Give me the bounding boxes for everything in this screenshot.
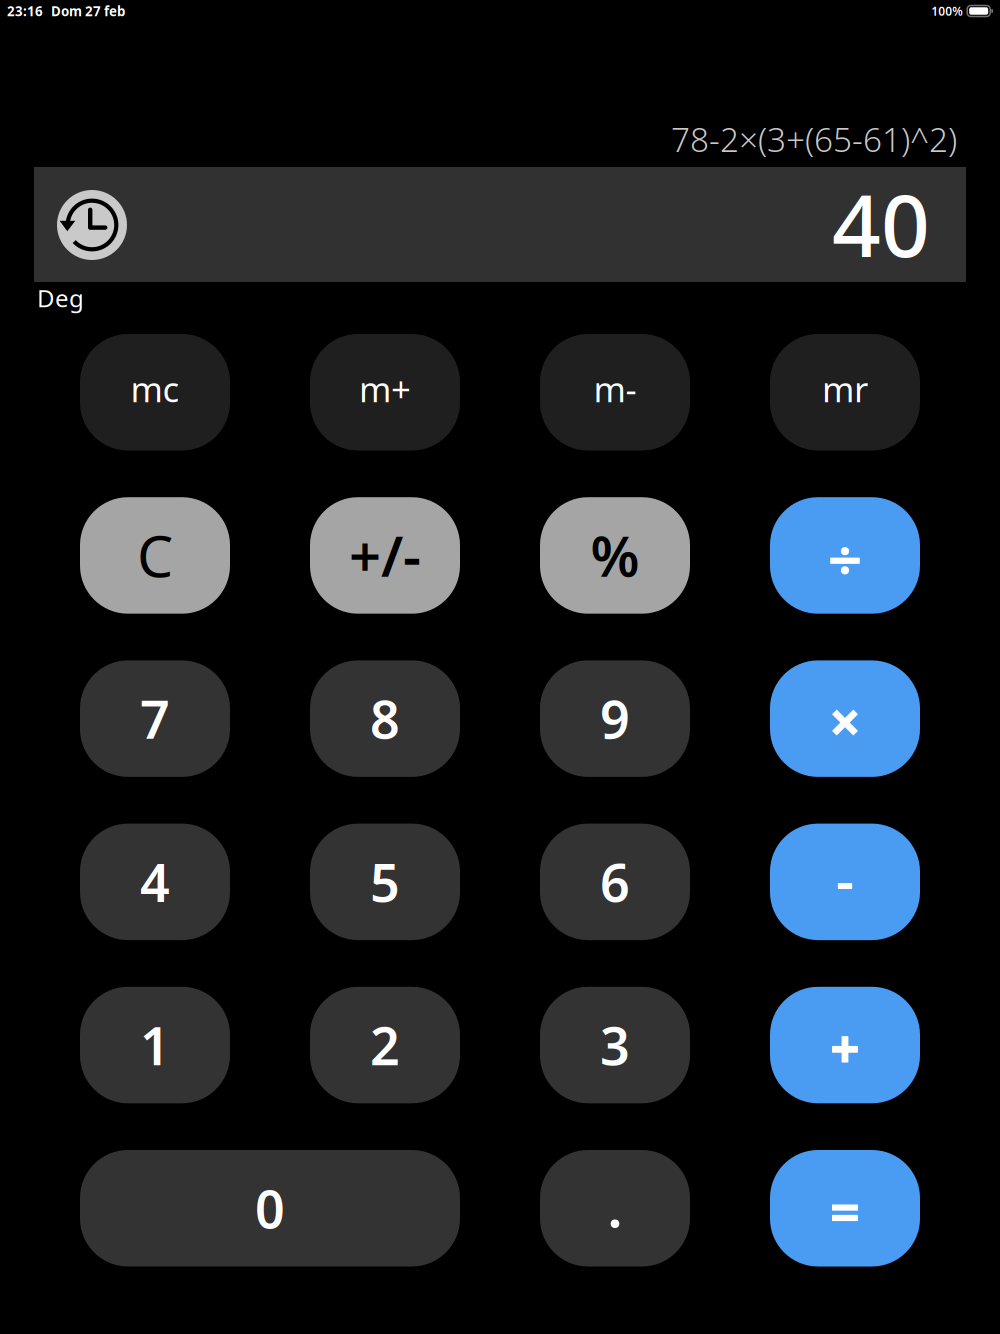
staticText: 0 xyxy=(255,1174,285,1243)
button[interactable]: Equals xyxy=(770,1150,920,1266)
button[interactable]: % xyxy=(540,497,690,614)
button[interactable]: Decimal point xyxy=(540,1150,690,1266)
button[interactable]: mc xyxy=(80,334,230,450)
staticText: % xyxy=(590,518,639,592)
button[interactable]: m- xyxy=(540,334,690,450)
button[interactable]: 8 xyxy=(310,660,460,777)
staticText: 2 xyxy=(370,1010,400,1080)
button[interactable]: Multiply xyxy=(770,660,920,777)
staticText: 100% xyxy=(931,3,963,19)
button[interactable]: 2 xyxy=(310,987,460,1103)
button[interactable]: m+ xyxy=(310,334,460,450)
button[interactable]: 1 xyxy=(80,987,230,1103)
staticText: +/- xyxy=(349,518,421,592)
button[interactable]: Divide xyxy=(770,497,920,614)
staticText: 8 xyxy=(370,684,400,753)
staticText: 6 xyxy=(600,847,630,916)
staticText: C xyxy=(137,517,173,593)
staticText: 40 xyxy=(832,167,930,281)
button[interactable]: 9 xyxy=(540,660,690,777)
button[interactable]: 0 xyxy=(80,1150,460,1266)
button[interactable]: 6 xyxy=(540,824,690,940)
button[interactable]: Minus xyxy=(770,824,920,940)
button[interactable]: 7 xyxy=(80,660,230,777)
staticText: m- xyxy=(593,366,636,412)
button[interactable]: 5 xyxy=(310,824,460,940)
staticText: 78-2×(3+(65-61)^2) xyxy=(671,117,957,161)
staticText: 1 xyxy=(140,1010,170,1080)
button[interactable]: +/- xyxy=(310,497,460,614)
button[interactable]: 4 xyxy=(80,824,230,940)
button[interactable]: C xyxy=(80,497,230,614)
button[interactable]: History xyxy=(57,190,127,260)
staticText: mr xyxy=(822,366,868,412)
staticText: Dom 27 feb xyxy=(51,2,125,20)
staticText: 4 xyxy=(140,847,170,916)
staticText: Deg xyxy=(37,282,84,314)
button[interactable]: Plus xyxy=(770,987,920,1103)
button[interactable]: mr xyxy=(770,334,920,450)
staticText: m+ xyxy=(359,366,411,412)
staticText: 7 xyxy=(140,684,170,753)
staticText: mc xyxy=(130,366,179,412)
staticText: 3 xyxy=(600,1010,630,1080)
button[interactable]: 3 xyxy=(540,987,690,1103)
staticText: 9 xyxy=(600,684,630,753)
staticText: 23:16 xyxy=(7,2,43,20)
staticText: 5 xyxy=(370,847,400,916)
